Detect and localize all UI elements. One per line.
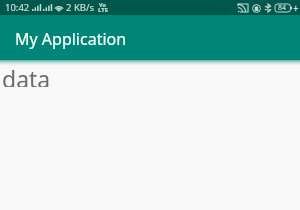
other: Charging bbox=[293, 5, 298, 12]
other: Mobile signal bbox=[43, 4, 52, 11]
staticText: data bbox=[2, 63, 51, 87]
other: Cast bbox=[238, 4, 248, 12]
staticText: 84 bbox=[278, 3, 287, 13]
staticText: 2 KB/s bbox=[66, 1, 95, 14]
other: VoLTE bbox=[98, 2, 109, 14]
staticText: 10:42 bbox=[5, 1, 30, 14]
button[interactable]: data bbox=[0, 69, 300, 93]
other: Alarm bbox=[252, 4, 261, 13]
staticText: LTE bbox=[98, 6, 109, 14]
other: Bluetooth bbox=[265, 4, 271, 12]
other: Wi-Fi bbox=[54, 4, 64, 12]
other: Mobile signal bbox=[32, 4, 41, 11]
other: Battery 84 percent bbox=[275, 3, 292, 13]
staticText: Vo bbox=[99, 1, 106, 8]
staticText: My Application bbox=[15, 28, 127, 50]
